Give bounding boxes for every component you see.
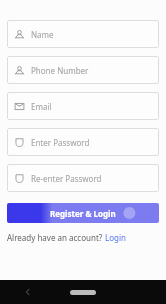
button[interactable]: Login bbox=[105, 232, 126, 243]
button[interactable]: Register & Login bbox=[7, 203, 159, 223]
button[interactable]: Phone Number bbox=[7, 56, 159, 84]
staticText: Phone Number bbox=[31, 65, 89, 76]
button[interactable]: Enter Password bbox=[7, 128, 159, 156]
staticText: Name bbox=[31, 29, 54, 40]
button[interactable]: Name bbox=[7, 20, 159, 48]
staticText: Already have an account? bbox=[7, 232, 105, 243]
staticText: Login bbox=[105, 232, 126, 243]
button[interactable]: Back bbox=[0, 280, 55, 304]
staticText: Register & Login bbox=[50, 208, 116, 219]
button[interactable]: Email bbox=[7, 92, 159, 120]
button[interactable]: Re-enter Password bbox=[7, 164, 159, 192]
button[interactable]: Home bbox=[70, 290, 96, 295]
staticText: Re-enter Password bbox=[31, 173, 102, 184]
staticText: Email bbox=[31, 101, 52, 112]
staticText: Enter Password bbox=[31, 137, 90, 148]
